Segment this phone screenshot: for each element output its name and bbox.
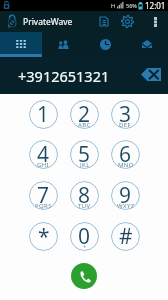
- button[interactable]: 5: [70, 140, 99, 169]
- button[interactable]: 1: [29, 100, 58, 129]
- button[interactable]: 8: [70, 181, 99, 210]
- staticText: DEF: [119, 121, 132, 129]
- staticText: #: [119, 222, 133, 251]
- staticText: +: [83, 243, 87, 251]
- staticText: PQRS: [35, 202, 52, 210]
- button[interactable]: 6: [111, 140, 140, 169]
- staticText: ABC: [78, 121, 91, 129]
- staticText: WXYZ: [117, 202, 135, 210]
- button[interactable]: 3: [111, 100, 140, 129]
- staticText: *: [38, 222, 50, 251]
- staticText: JKL: [80, 161, 90, 169]
- staticText: TUV: [78, 202, 91, 210]
- staticText: PrivateWave: [23, 16, 73, 28]
- button[interactable]: Documents: [94, 11, 114, 32]
- staticText: 56%: [126, 2, 137, 9]
- button[interactable]: Call: [71, 263, 97, 289]
- staticText: 9: [119, 181, 132, 210]
- button[interactable]: 2: [70, 100, 99, 129]
- staticText: H: [111, 2, 116, 9]
- staticText: 2: [78, 100, 91, 129]
- staticText: 4: [37, 140, 50, 169]
- button[interactable]: 9: [111, 181, 140, 210]
- button[interactable]: More options: [147, 11, 163, 32]
- button[interactable]: Settings: [117, 11, 137, 32]
- staticText: 8: [78, 181, 91, 210]
- staticText: 7: [37, 181, 50, 210]
- button[interactable]: Backspace: [138, 61, 164, 87]
- button[interactable]: Messages: [126, 32, 168, 57]
- staticText: +3912651321: [18, 66, 110, 86]
- staticText: 1: [37, 100, 50, 129]
- button[interactable]: 0: [70, 222, 99, 251]
- staticText: MNO: [118, 161, 134, 169]
- button[interactable]: #: [111, 222, 140, 251]
- staticText: 12:01: [145, 0, 166, 11]
- button[interactable]: 7: [29, 181, 58, 210]
- button[interactable]: *: [29, 222, 58, 251]
- staticText: GHI: [37, 161, 50, 169]
- button[interactable]: Contacts: [42, 32, 84, 57]
- button[interactable]: 4: [29, 140, 58, 169]
- staticText: 0: [78, 222, 91, 251]
- button[interactable]: Dialpad: [0, 32, 42, 57]
- staticText: 3: [119, 100, 132, 129]
- staticText: 6: [119, 140, 132, 169]
- button[interactable]: Recent calls: [84, 32, 126, 57]
- staticText: 5: [78, 140, 91, 169]
